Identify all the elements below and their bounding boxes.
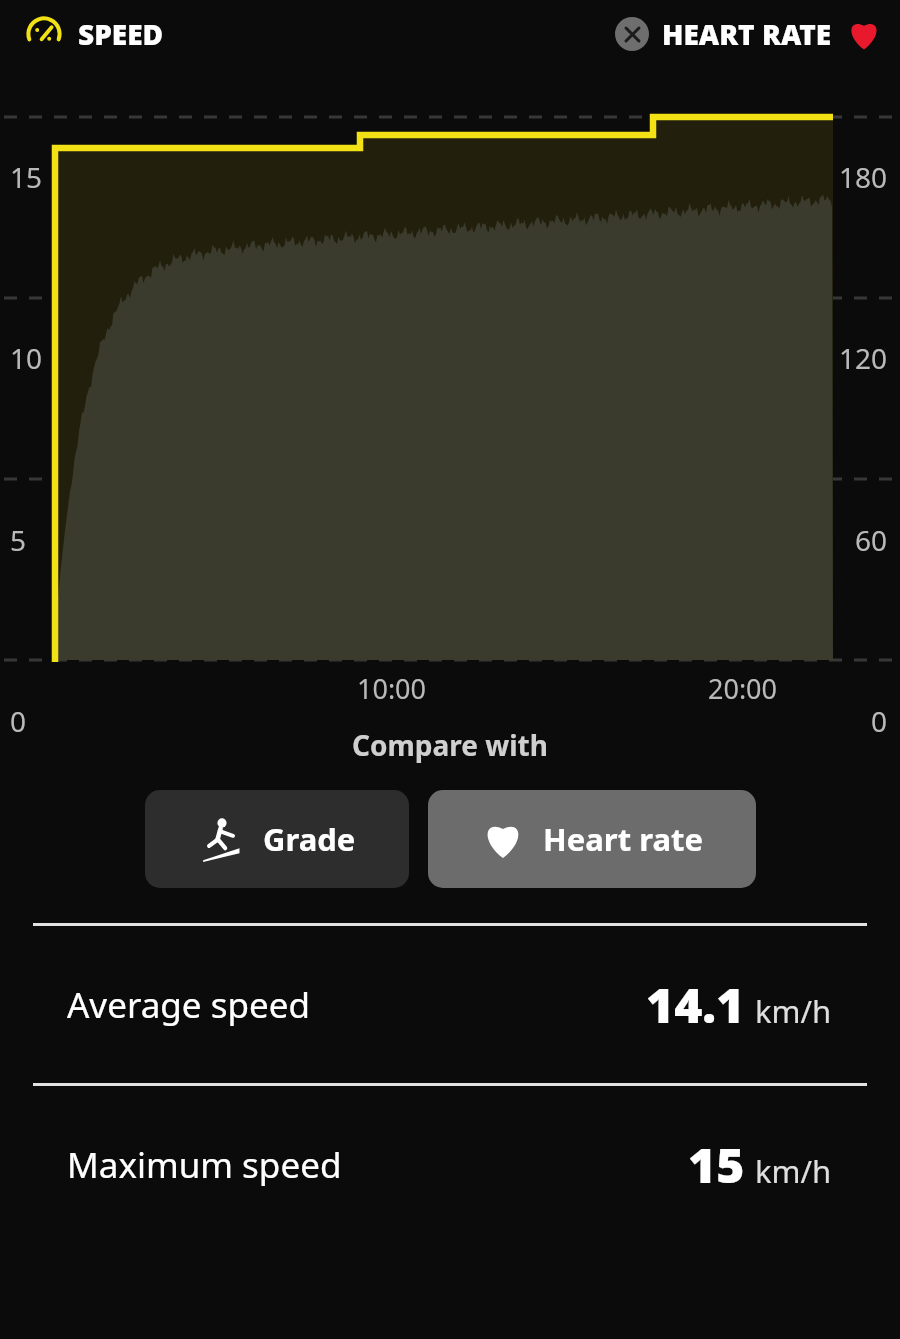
staticText: 5 xyxy=(10,521,27,559)
staticText: 15 xyxy=(10,158,43,196)
button[interactable]: Maximum speed xyxy=(0,1086,900,1243)
staticText: 10 xyxy=(10,339,43,377)
staticText: 10:00 xyxy=(357,670,427,707)
staticText: Compare with xyxy=(352,726,548,764)
staticText: 20:00 xyxy=(708,670,778,707)
staticText: 120 xyxy=(839,339,888,377)
staticText: HEART RATE xyxy=(662,15,832,53)
staticText: 15 xyxy=(688,1132,745,1197)
staticText: SPEED xyxy=(78,15,164,53)
staticText: km/h xyxy=(755,1150,832,1192)
button[interactable]: SPEED xyxy=(24,14,164,54)
button[interactable]: Grade xyxy=(145,790,409,888)
staticText: Average speed xyxy=(67,981,310,1029)
button[interactable]: Average speed xyxy=(0,926,900,1083)
staticText: 14.1 xyxy=(646,972,745,1037)
staticText: 0 xyxy=(871,702,888,740)
staticText: 60 xyxy=(855,521,888,559)
button[interactable]: Close heart rate overlay xyxy=(615,17,649,51)
button[interactable]: Heart rate xyxy=(428,790,756,888)
staticText: Heart rate xyxy=(543,818,703,860)
staticText: Grade xyxy=(263,818,356,860)
staticText: 180 xyxy=(839,158,888,196)
staticText: Maximum speed xyxy=(67,1141,342,1189)
staticText: km/h xyxy=(755,990,832,1032)
staticText: 0 xyxy=(10,702,27,740)
